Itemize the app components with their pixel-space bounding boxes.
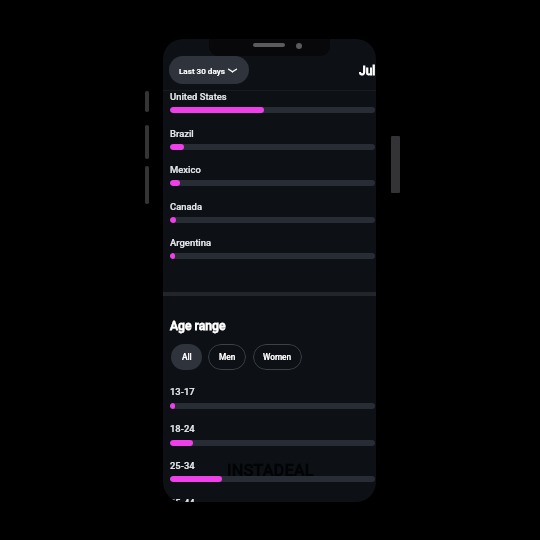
button[interactable]: Canada [170, 197, 375, 227]
button[interactable]: Last 30 days [169, 56, 249, 84]
other: Volume down [145, 166, 149, 204]
button[interactable]: Men [208, 344, 246, 370]
staticText: Women [263, 352, 292, 362]
other: Volume up [145, 125, 149, 159]
staticText: Mexico [170, 164, 201, 175]
staticText: Canada [170, 201, 202, 212]
button[interactable]: Brazil [170, 124, 375, 154]
button[interactable]: 35-44 [170, 493, 375, 502]
staticText: United States [170, 91, 227, 102]
button[interactable]: 25-34 [170, 456, 375, 486]
button[interactable]: Mexico [170, 160, 375, 190]
staticText: 13-17 [170, 386, 195, 397]
button[interactable]: Argentina [170, 233, 375, 263]
staticText: INSTADEAL [227, 461, 314, 480]
staticText: Age range [170, 319, 226, 333]
button[interactable]: 18-24 [170, 419, 375, 450]
staticText: Brazil [170, 128, 194, 139]
other: Silent switch [145, 91, 149, 112]
button[interactable]: All [171, 344, 202, 370]
button[interactable]: Women [253, 344, 302, 370]
button[interactable]: United States [170, 87, 375, 117]
staticText: Argentina [170, 237, 212, 248]
staticText: 18-24 [170, 423, 195, 434]
staticText: All [182, 352, 192, 362]
staticText: Last 30 days [179, 66, 225, 75]
staticText: 25-34 [170, 460, 195, 471]
staticText: Men [219, 352, 236, 362]
button[interactable]: 13-17 [170, 382, 375, 412]
staticText: 35-44 [170, 497, 195, 502]
staticText: Jul [359, 64, 376, 78]
